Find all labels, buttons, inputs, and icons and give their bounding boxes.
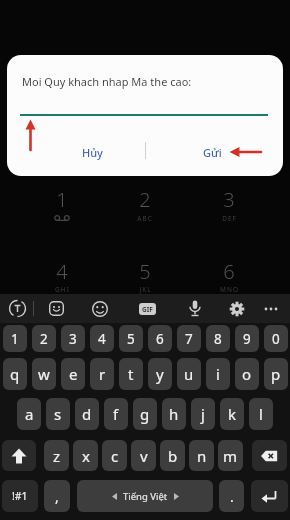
staticText: 8: [214, 330, 222, 348]
button[interactable]: m: [218, 440, 243, 471]
staticText: 5: [127, 330, 135, 348]
button[interactable]: 2: [32, 325, 56, 352]
button[interactable]: [2, 440, 36, 471]
button[interactable]: j: [191, 398, 215, 430]
staticText: DEF: [222, 214, 237, 223]
button[interactable]: !#1: [2, 480, 38, 512]
staticText: 4: [56, 258, 68, 285]
staticText: 0: [272, 330, 280, 348]
button[interactable]: Gửi: [182, 140, 242, 164]
staticText: v: [140, 446, 148, 466]
staticText: g: [140, 404, 150, 424]
staticText: e: [69, 364, 78, 384]
staticText: 3: [223, 186, 235, 213]
button[interactable]: t: [119, 358, 143, 390]
staticText: 6: [156, 330, 164, 348]
button[interactable]: n: [189, 440, 214, 471]
button[interactable]: ,: [44, 480, 70, 512]
button[interactable]: d: [75, 398, 99, 430]
staticText: 7: [185, 330, 193, 348]
staticText: z: [53, 446, 61, 466]
button[interactable]: v: [131, 440, 156, 471]
staticText: MNO: [220, 285, 239, 294]
staticText: 5: [139, 258, 151, 285]
staticText: j: [201, 404, 205, 424]
button[interactable]: [252, 440, 287, 471]
staticText: w: [38, 364, 50, 384]
staticText: JKL: [139, 285, 152, 294]
staticText: x: [82, 446, 90, 466]
button[interactable]: Tiếng Việt: [77, 480, 213, 512]
button[interactable]: [226, 294, 248, 323]
staticText: y: [156, 364, 164, 384]
staticText: GIF: [142, 305, 153, 314]
button[interactable]: c: [102, 440, 127, 471]
staticText: ABC: [137, 214, 153, 223]
button[interactable]: [184, 294, 206, 323]
staticText: t: [128, 364, 134, 384]
button[interactable]: z: [44, 440, 69, 471]
staticText: 1: [56, 186, 68, 213]
button[interactable]: [4, 294, 30, 323]
button[interactable]: a: [17, 398, 41, 430]
button[interactable]: 1: [3, 325, 27, 352]
staticText: Gửi: [203, 145, 222, 160]
staticText: Tiếng Việt: [123, 490, 168, 503]
button[interactable]: r: [90, 358, 114, 390]
button[interactable]: w: [32, 358, 56, 390]
staticText: 2: [40, 330, 48, 348]
staticText: a: [25, 404, 34, 424]
button[interactable]: u: [177, 358, 201, 390]
button[interactable]: [251, 480, 288, 512]
staticText: u: [184, 364, 194, 384]
button[interactable]: 0: [264, 325, 288, 352]
button[interactable]: p: [264, 358, 288, 390]
staticText: 3: [69, 330, 77, 348]
button[interactable]: k: [220, 398, 244, 430]
button[interactable]: [44, 294, 68, 323]
staticText: k: [228, 404, 237, 424]
button[interactable]: 6: [148, 325, 172, 352]
button[interactable]: [88, 294, 112, 323]
button[interactable]: h: [162, 398, 186, 430]
button[interactable]: 7: [177, 325, 201, 352]
button[interactable]: [260, 294, 282, 323]
button[interactable]: Hủy: [62, 140, 122, 164]
staticText: r: [99, 364, 106, 384]
button[interactable]: g: [133, 398, 157, 430]
staticText: 6: [223, 258, 235, 285]
staticText: 9: [243, 330, 251, 348]
button[interactable]: GIF: [136, 294, 158, 323]
staticText: s: [54, 404, 62, 424]
button[interactable]: x: [73, 440, 98, 471]
staticText: q: [10, 364, 20, 384]
staticText: l: [259, 404, 263, 424]
button[interactable]: 3: [61, 325, 85, 352]
button[interactable]: s: [46, 398, 70, 430]
staticText: !#1: [12, 489, 28, 503]
staticText: 2: [139, 186, 151, 213]
button[interactable]: o: [235, 358, 259, 390]
button[interactable]: f: [104, 398, 128, 430]
button[interactable]: 9: [235, 325, 259, 352]
staticText: c: [111, 446, 119, 466]
staticText: ,: [55, 487, 59, 506]
staticText: .: [230, 487, 234, 506]
button[interactable]: 4: [90, 325, 114, 352]
staticText: b: [168, 446, 178, 466]
staticText: GHI: [55, 285, 70, 294]
staticText: p: [271, 364, 281, 384]
button[interactable]: 8: [206, 325, 230, 352]
button[interactable]: e: [61, 358, 85, 390]
button[interactable]: 5: [119, 325, 143, 352]
staticText: d: [82, 404, 92, 424]
staticText: i: [216, 364, 220, 384]
button[interactable]: b: [160, 440, 185, 471]
staticText: f: [113, 404, 119, 424]
button[interactable]: .: [219, 480, 244, 512]
button[interactable]: i: [206, 358, 230, 390]
button[interactable]: l: [249, 398, 273, 430]
button[interactable]: y: [148, 358, 172, 390]
button[interactable]: q: [3, 358, 27, 390]
staticText: n: [197, 446, 207, 466]
